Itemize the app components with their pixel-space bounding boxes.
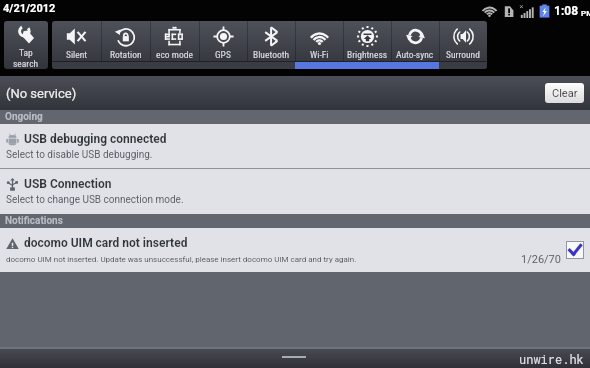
staticText: eco mode [156,49,193,60]
button[interactable]: Wi-Fi [295,21,343,69]
staticText: Auto-sync [396,49,434,60]
staticText: docomo UIM card not inserted [24,236,188,250]
button[interactable]: Surround [439,21,487,69]
staticText: Tap [19,47,33,58]
staticText: docomo UIM not inserted. Update was unsu… [6,255,357,264]
staticText: Brightness [347,49,388,60]
button[interactable]: Clear [545,83,584,103]
button[interactable]: USB debugging connected [0,124,590,169]
button[interactable]: Rotation [101,21,150,69]
button[interactable]: Dismiss notification [567,242,583,258]
staticText: Silent [66,49,88,60]
staticText: Wi-Fi [310,49,329,60]
staticText: (No service) [6,86,77,101]
button[interactable]: Bluetooth [247,21,295,69]
staticText: Ongoing [5,111,43,123]
staticText: search [13,58,39,69]
button[interactable]: Brightness [343,21,391,69]
staticText: Notifications [5,215,63,227]
staticText: 1/26/70 [521,253,561,266]
staticText: Clear [552,87,578,100]
button[interactable]: Tap [4,21,48,69]
staticText: Rotation [110,49,142,60]
staticText: 1:08 [554,4,579,18]
staticText: USB debugging connected [24,132,167,146]
staticText: Surround [446,49,480,60]
staticText: 4/21/2012 [3,2,56,15]
staticText: PM [581,9,590,18]
button[interactable]: GPS [199,21,247,69]
staticText: GPS [215,49,231,60]
staticText: Bluetooth [253,49,290,60]
button[interactable]: eco mode [150,21,199,69]
staticText: Select to disable USB debugging. [6,149,153,161]
button[interactable]: docomo UIM card not inserted [0,228,590,272]
staticText: USB Connection [24,177,112,191]
button[interactable]: Silent [52,21,101,69]
button[interactable]: USB Connection [0,169,590,214]
button[interactable]: Auto-sync [391,21,439,69]
staticText: unwire.hk [519,351,584,367]
staticText: Select to change USB connection mode. [6,194,184,206]
